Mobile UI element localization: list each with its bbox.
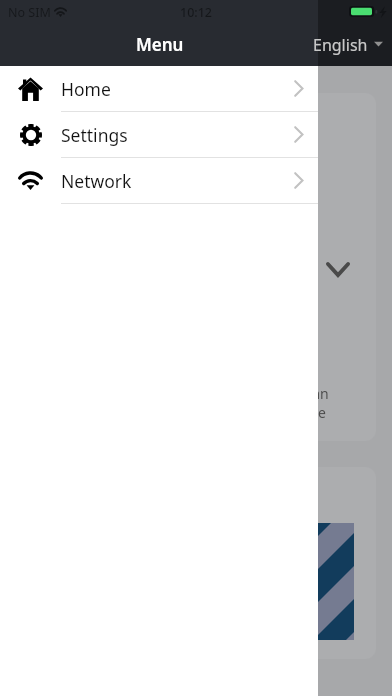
button[interactable]: Network <box>0 158 318 204</box>
staticText: Tap the section header above to expand i… <box>34 384 329 422</box>
staticText: Network <box>61 169 132 193</box>
staticText: No SIM <box>8 4 51 21</box>
button[interactable] <box>16 467 376 659</box>
staticText: English <box>313 34 368 56</box>
staticText: Menu <box>136 33 184 56</box>
staticText: Settings <box>61 123 128 147</box>
staticText: Home <box>61 77 111 101</box>
button[interactable]: English <box>313 34 383 56</box>
button[interactable]: Home <box>0 66 318 112</box>
button[interactable]: Settings <box>0 112 318 158</box>
staticText: 10:12 <box>180 4 213 21</box>
other: Expand <box>326 262 350 277</box>
button[interactable]: Expand <box>16 93 376 441</box>
